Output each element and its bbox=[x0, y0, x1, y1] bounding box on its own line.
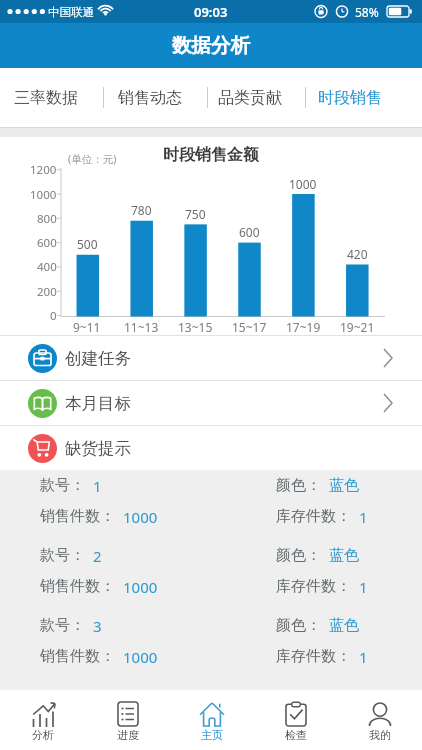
staticText: (单位：元) bbox=[68, 152, 117, 166]
staticText: 主页 bbox=[201, 728, 223, 742]
staticText: 款号： bbox=[40, 616, 85, 635]
staticText: 库存件数： bbox=[276, 647, 351, 666]
staticText: 中国联通 bbox=[48, 5, 94, 19]
staticText: 9~11 bbox=[73, 319, 101, 333]
staticText: 时段销售金额 bbox=[163, 145, 259, 162]
staticText: 数据分析 bbox=[172, 33, 250, 58]
staticText: 我的 bbox=[369, 728, 391, 742]
staticText: 600 bbox=[37, 235, 57, 249]
staticText: 库存件数： bbox=[276, 507, 351, 526]
staticText: 09:03 bbox=[194, 3, 228, 20]
staticText: 库存件数： bbox=[276, 577, 351, 596]
staticText: 1 bbox=[93, 476, 102, 496]
staticText: 颜色： bbox=[276, 476, 321, 495]
staticText: 款号： bbox=[40, 546, 85, 565]
staticText: 420 bbox=[347, 246, 368, 260]
button[interactable] bbox=[104, 68, 207, 127]
staticText: 600 bbox=[239, 224, 260, 238]
staticText: 0 bbox=[50, 308, 57, 322]
staticText: 颜色： bbox=[276, 546, 321, 565]
staticText: 创建任务 bbox=[65, 348, 131, 369]
staticText: 本月目标 bbox=[65, 393, 131, 414]
staticText: 19~21 bbox=[340, 319, 375, 333]
staticText: 750 bbox=[185, 206, 206, 220]
staticText: 1 bbox=[359, 507, 368, 527]
staticText: 13~15 bbox=[178, 319, 213, 333]
button[interactable] bbox=[0, 68, 103, 127]
button[interactable]: 主页 bbox=[170, 690, 254, 750]
staticText: 1000 bbox=[123, 507, 158, 527]
staticText: 1200 bbox=[30, 162, 57, 176]
staticText: 蓝色 bbox=[329, 616, 359, 635]
button[interactable]: 分析 bbox=[0, 690, 85, 750]
staticText: 颜色： bbox=[276, 616, 321, 635]
staticText: 780 bbox=[131, 202, 152, 216]
staticText: 销售动态 bbox=[118, 88, 182, 108]
button[interactable]: 创建任务 bbox=[0, 336, 422, 380]
staticText: 时段销售 bbox=[318, 88, 382, 108]
staticText: 11~13 bbox=[124, 319, 159, 333]
staticText: 1000 bbox=[123, 647, 158, 667]
staticText: 58% bbox=[355, 4, 379, 20]
button[interactable]: 检查 bbox=[254, 690, 338, 750]
staticText: 800 bbox=[37, 211, 57, 225]
staticText: 分析 bbox=[32, 728, 54, 742]
staticText: 500 bbox=[77, 236, 98, 250]
staticText: 1000 bbox=[289, 176, 317, 190]
staticText: 三率数据 bbox=[14, 88, 78, 108]
staticText: 1 bbox=[359, 647, 368, 667]
staticText: 销售件数： bbox=[40, 647, 115, 666]
staticText: 检查 bbox=[285, 728, 307, 742]
staticText: 17~19 bbox=[286, 319, 321, 333]
staticText: 15~17 bbox=[232, 319, 267, 333]
button[interactable]: 缺货提示 bbox=[0, 426, 422, 470]
button[interactable]: 进度 bbox=[85, 690, 170, 750]
staticText: 3 bbox=[93, 616, 102, 636]
staticText: 1000 bbox=[123, 577, 158, 597]
staticText: 销售件数： bbox=[40, 577, 115, 596]
staticText: 1 bbox=[359, 577, 368, 597]
staticText: 400 bbox=[37, 259, 57, 273]
staticText: 2 bbox=[93, 546, 102, 566]
button[interactable]: 本月目标 bbox=[0, 381, 422, 425]
staticText: 品类贡献 bbox=[218, 88, 282, 108]
staticText: 200 bbox=[37, 284, 57, 298]
staticText: 缺货提示 bbox=[65, 438, 131, 459]
staticText: 1000 bbox=[30, 187, 57, 201]
staticText: 蓝色 bbox=[329, 476, 359, 495]
staticText: 款号： bbox=[40, 476, 85, 495]
button[interactable] bbox=[306, 68, 422, 127]
staticText: 销售件数： bbox=[40, 507, 115, 526]
staticText: 蓝色 bbox=[329, 546, 359, 565]
staticText: 进度 bbox=[117, 728, 139, 742]
button[interactable]: 我的 bbox=[338, 690, 422, 750]
button[interactable] bbox=[208, 68, 305, 127]
